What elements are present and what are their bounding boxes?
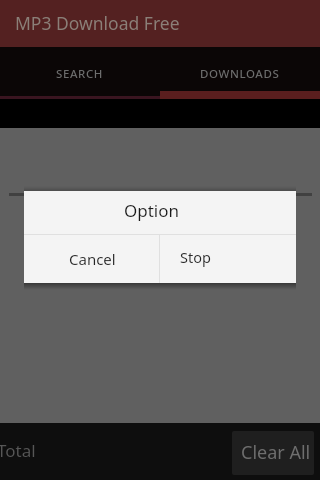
button[interactable]: Clear All — [232, 431, 314, 475]
staticText: Option — [124, 199, 180, 222]
staticText: Total — [0, 439, 36, 462]
staticText: Stop — [180, 247, 211, 267]
staticText: DOWNLOADS — [200, 66, 280, 82]
staticText: MP3 Download Free — [15, 11, 180, 35]
staticText: SEARCH — [56, 66, 104, 82]
button[interactable]: Cancel — [24, 235, 159, 283]
button[interactable]: Stop — [160, 235, 296, 283]
staticText: Clear All — [241, 440, 311, 465]
button[interactable]: DOWNLOADS — [160, 47, 320, 99]
staticText: Cancel — [69, 249, 116, 269]
button[interactable]: SEARCH — [0, 47, 160, 99]
